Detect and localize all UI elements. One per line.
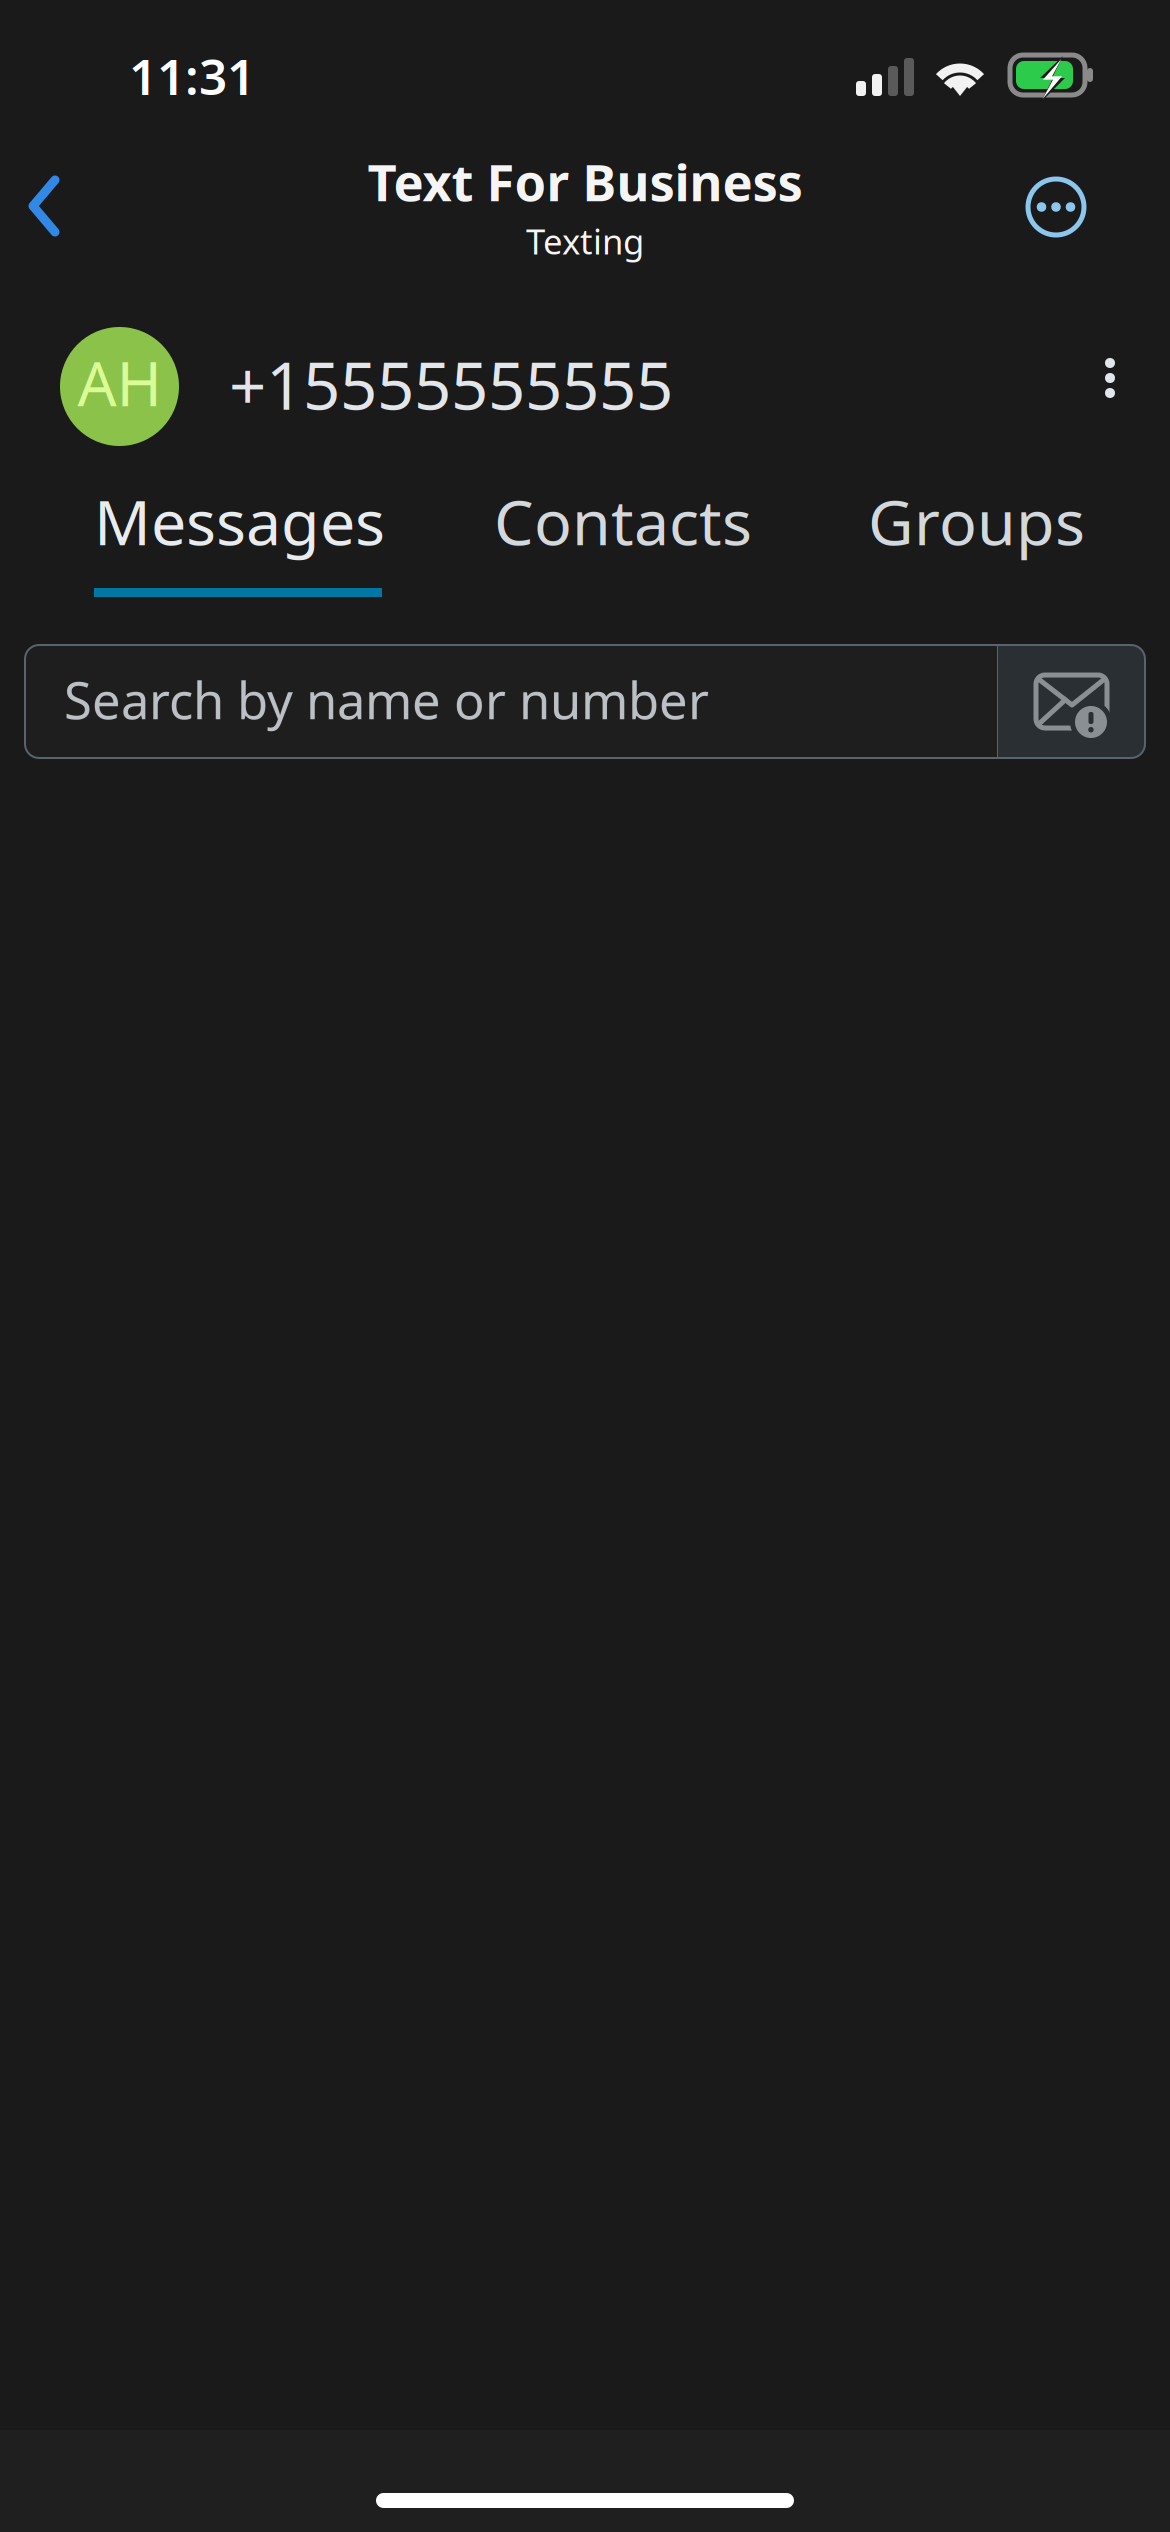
staticText: 11:31 [129,43,255,108]
staticText: AH [77,342,161,423]
staticText: Groups [868,479,1085,563]
staticText: Text For Business [367,148,802,215]
button[interactable]: More options [1010,161,1102,253]
staticText: Search by name or number [64,666,709,733]
button[interactable]: Contact options [1075,328,1145,428]
button[interactable]: Contacts [494,473,759,569]
button[interactable]: Back [17,172,103,264]
staticText: Texting [526,218,644,264]
staticText: Messages [94,479,385,563]
button[interactable]: Groups [868,473,1088,569]
button[interactable]: Unread messages [998,645,1145,758]
button[interactable]: Messages [94,473,394,569]
staticText: +15555555555 [229,341,673,428]
staticText: Contacts [494,479,752,563]
